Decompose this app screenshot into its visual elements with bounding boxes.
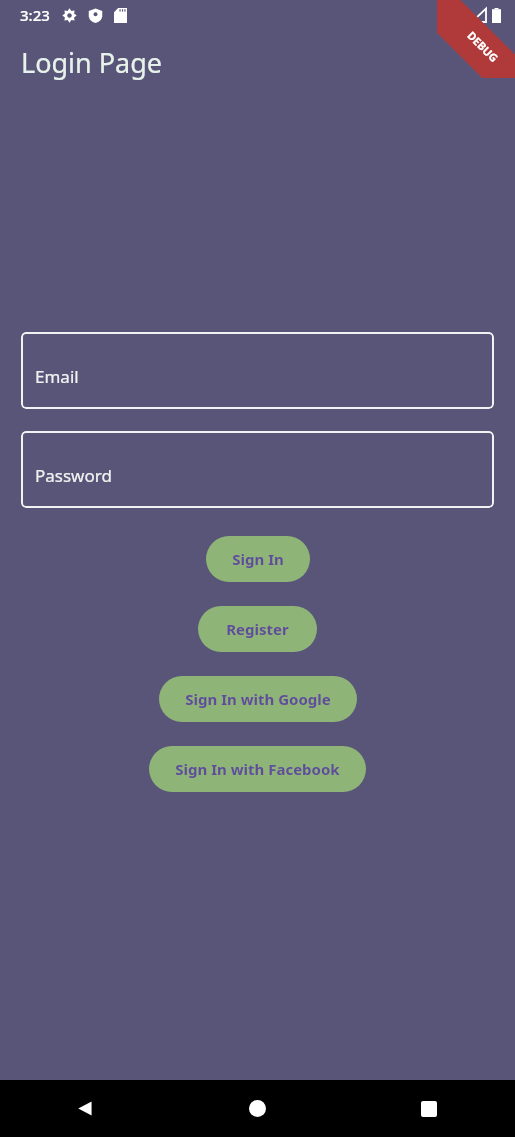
button[interactable]: Password <box>21 431 494 508</box>
button[interactable]: Sign In with Facebook <box>149 746 366 792</box>
staticText: DEBUG <box>464 28 502 65</box>
staticText: Password <box>35 464 112 487</box>
staticText: Sign In with Google <box>185 689 331 709</box>
staticText: Sign In with Facebook <box>175 759 340 779</box>
staticText: Email <box>35 365 79 388</box>
button[interactable]: Sign In with Google <box>159 676 357 722</box>
staticText: Register <box>226 619 289 639</box>
button[interactable]: Recent apps <box>343 1080 515 1137</box>
button[interactable]: Email <box>21 332 494 409</box>
button[interactable]: Home <box>171 1080 343 1137</box>
staticText: 3:23 <box>20 5 50 25</box>
button[interactable]: Sign In <box>206 536 310 582</box>
button[interactable]: Back <box>0 1080 171 1137</box>
staticText: Sign In <box>232 549 284 569</box>
button[interactable]: Register <box>198 606 317 652</box>
staticText: Login Page <box>21 44 163 81</box>
